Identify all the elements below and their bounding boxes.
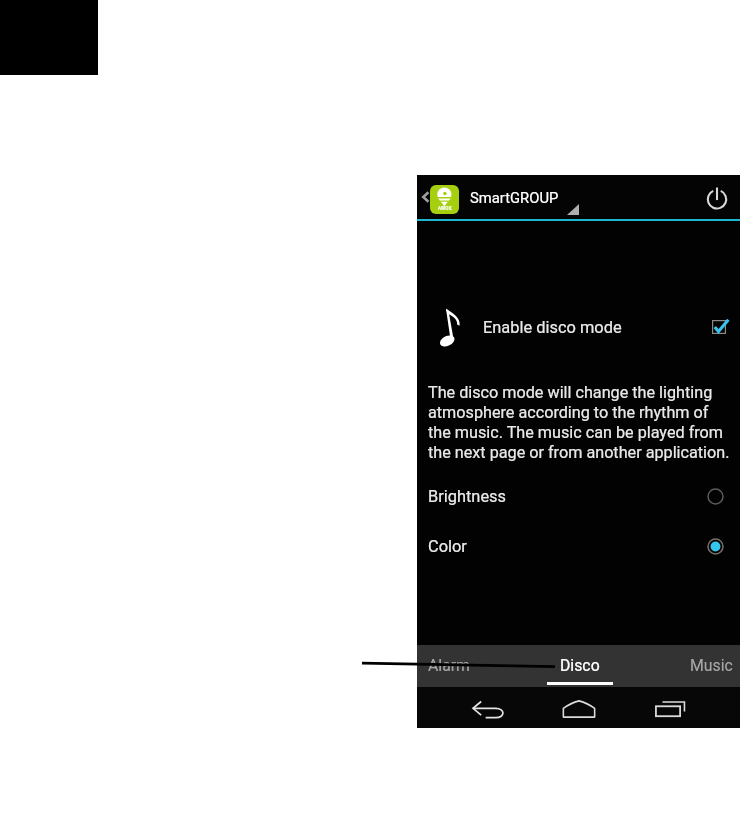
button[interactable]: Alarm (394, 645, 504, 687)
staticText: AWOX (438, 206, 452, 211)
button[interactable]: Disco (525, 645, 635, 687)
button[interactable]: Power (699, 181, 735, 217)
button[interactable]: Enable disco mode (417, 302, 740, 352)
staticText: Color (428, 537, 467, 556)
staticText: Enable disco mode (483, 318, 622, 337)
staticText: SmartGROUP (470, 189, 559, 206)
button[interactable]: Navigate up (418, 175, 462, 219)
button[interactable]: Recent apps (647, 693, 693, 725)
staticText: Disco (560, 656, 600, 675)
button[interactable]: Home (556, 693, 602, 725)
button[interactable]: Music (656, 645, 740, 687)
staticText: Music (690, 656, 733, 675)
button[interactable]: Color (417, 531, 740, 561)
button[interactable]: Brightness (417, 481, 740, 511)
staticText: Brightness (428, 487, 507, 506)
button[interactable]: Back (466, 693, 512, 725)
staticText: Alarm (428, 656, 470, 675)
staticText: The disco mode will change the lighting … (428, 383, 730, 462)
